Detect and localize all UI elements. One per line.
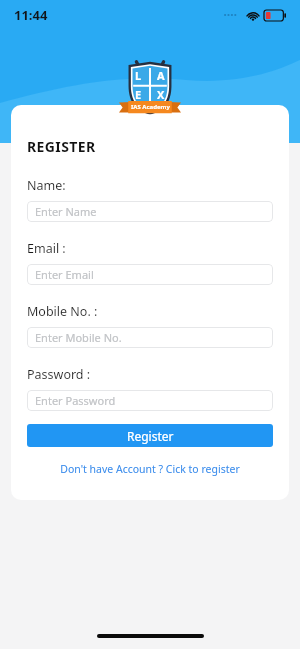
- button[interactable]: Enter Email: [27, 264, 273, 285]
- button[interactable]: Enter Mobile No.: [27, 327, 273, 348]
- staticText: Register: [127, 428, 174, 444]
- button[interactable]: Don't have Account ? Cick to register: [27, 462, 273, 476]
- staticText: Name:: [27, 177, 66, 194]
- button[interactable]: Register: [27, 424, 273, 447]
- staticText: Enter Name: [35, 204, 97, 219]
- other: LAEX IAS Academy logo: [117, 53, 183, 121]
- staticText: Enter Email: [35, 267, 94, 282]
- staticText: E: [135, 87, 142, 102]
- staticText: X: [157, 87, 165, 102]
- staticText: 11:44: [14, 6, 48, 24]
- staticText: Enter Password: [35, 393, 116, 408]
- staticText: IAS Academy: [131, 103, 170, 111]
- button[interactable]: Enter Password: [27, 390, 273, 411]
- staticText: Don't have Account ? Cick to register: [60, 462, 240, 476]
- staticText: Mobile No. :: [27, 303, 98, 320]
- staticText: L: [135, 68, 142, 83]
- staticText: Enter Mobile No.: [35, 330, 122, 345]
- staticText: REGISTER: [27, 137, 96, 156]
- button[interactable]: Enter Name: [27, 201, 273, 222]
- staticText: A: [157, 68, 165, 83]
- staticText: Email :: [27, 240, 66, 257]
- staticText: Password :: [27, 366, 91, 383]
